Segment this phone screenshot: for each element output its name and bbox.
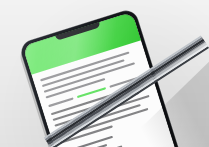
button[interactable]: Phone showing messaging app [0, 0, 209, 147]
